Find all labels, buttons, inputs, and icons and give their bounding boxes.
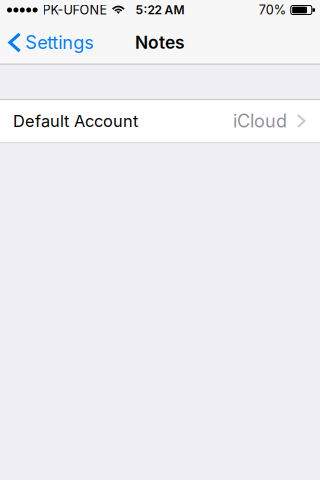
button[interactable]: Settings (0, 20, 104, 64)
staticText: Notes (135, 32, 185, 53)
staticText: iCloud (233, 110, 287, 132)
staticText: 70% (259, 2, 286, 18)
staticText: Default Account (13, 111, 138, 131)
staticText: 5:22 AM (135, 3, 184, 17)
staticText: PK-UFONE (43, 2, 108, 18)
button[interactable]: Default Account (0, 99, 320, 143)
staticText: Settings (25, 32, 94, 53)
